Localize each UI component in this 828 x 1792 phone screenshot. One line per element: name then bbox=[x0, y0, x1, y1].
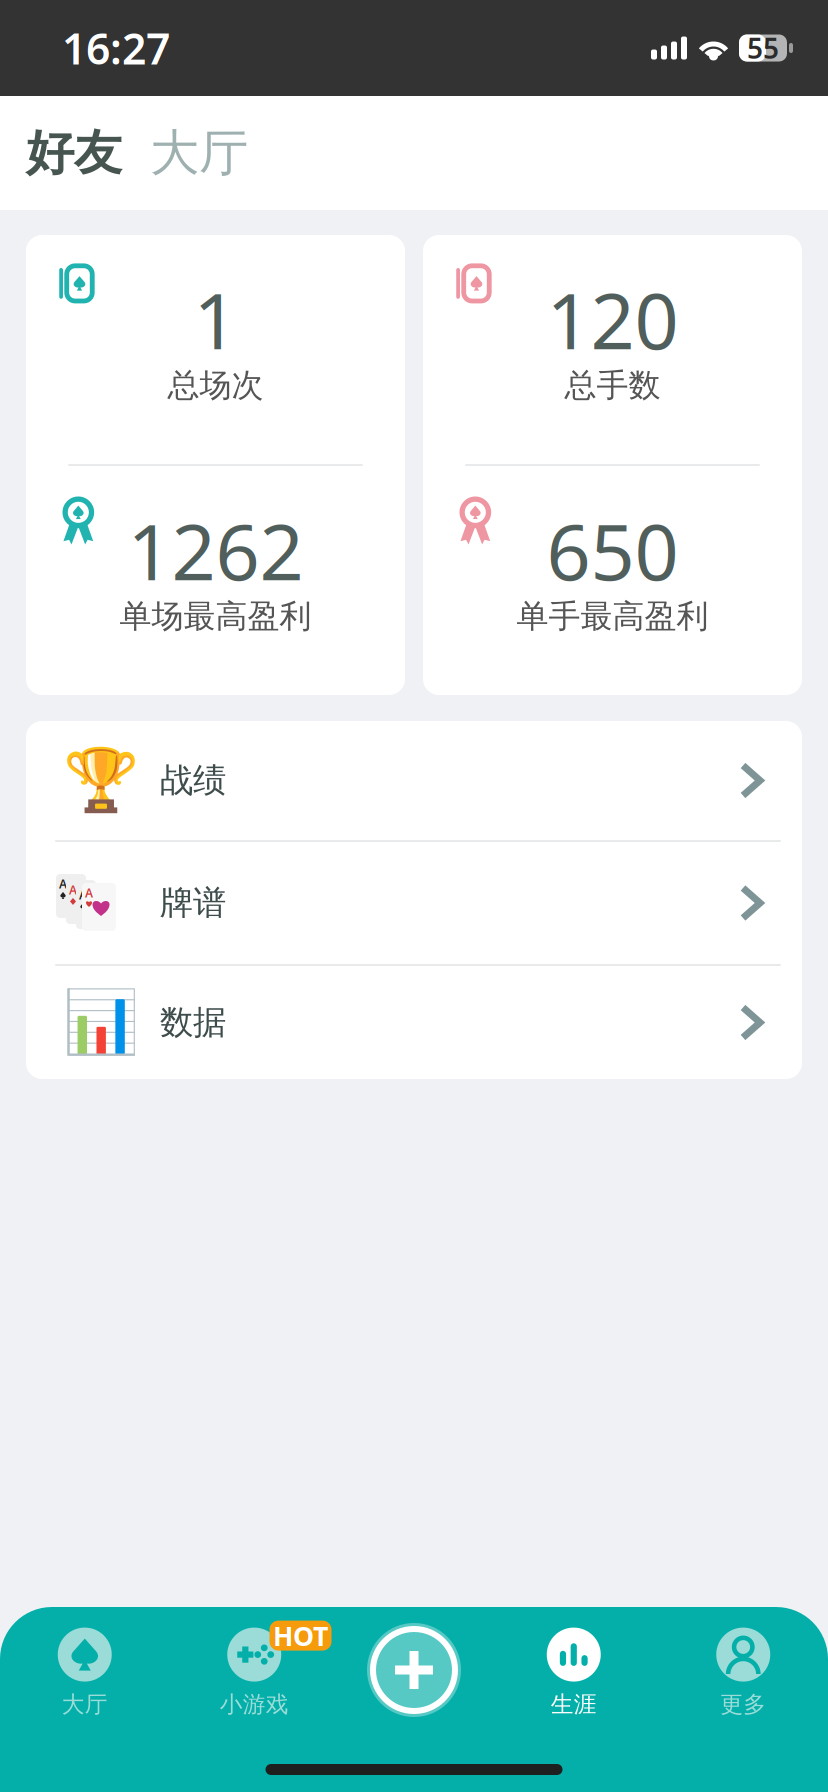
button[interactable]: 好友 bbox=[26, 123, 122, 182]
staticText: A bbox=[85, 885, 93, 901]
button[interactable]: 📊 bbox=[26, 966, 802, 1079]
staticText: 1262 bbox=[127, 499, 303, 602]
staticText: HOT bbox=[273, 1618, 328, 1653]
staticText: 650 bbox=[546, 499, 678, 602]
staticText: 小游戏 bbox=[220, 1691, 289, 1718]
button[interactable]: 更多 bbox=[658, 1628, 828, 1718]
staticText: A bbox=[79, 887, 87, 903]
staticText: 单手最高盈利 bbox=[516, 597, 708, 636]
staticText: 总场次 bbox=[167, 366, 263, 405]
staticText: 数据 bbox=[160, 1002, 226, 1043]
button[interactable]: 小游戏 bbox=[169, 1628, 339, 1718]
staticText: 🏆 bbox=[63, 745, 139, 816]
button[interactable]: 生涯 bbox=[489, 1628, 658, 1718]
staticText: 📊 bbox=[63, 987, 139, 1058]
staticText: 120 bbox=[546, 268, 678, 371]
staticText: 大厅 bbox=[62, 1691, 108, 1718]
staticText: 总手数 bbox=[564, 366, 660, 405]
button[interactable]: Create bbox=[339, 1626, 489, 1720]
staticText: 好友 bbox=[26, 123, 122, 182]
staticText: 16:27 bbox=[62, 20, 170, 76]
staticText: 生涯 bbox=[551, 1691, 597, 1718]
staticText: 大厅 bbox=[150, 123, 248, 183]
staticText: 55 bbox=[747, 29, 779, 67]
button[interactable]: A bbox=[26, 842, 802, 966]
staticText: 战绩 bbox=[160, 760, 226, 801]
staticText: A bbox=[59, 876, 67, 892]
staticText: 1 bbox=[193, 268, 237, 371]
staticText: A bbox=[69, 882, 77, 898]
staticText: 单场最高盈利 bbox=[119, 597, 311, 636]
staticText: 牌谱 bbox=[160, 882, 226, 923]
button[interactable]: 🏆 bbox=[26, 721, 802, 842]
staticText: 更多 bbox=[720, 1691, 766, 1718]
button[interactable]: 大厅 bbox=[0, 1628, 169, 1718]
button[interactable]: 大厅 bbox=[150, 123, 248, 183]
